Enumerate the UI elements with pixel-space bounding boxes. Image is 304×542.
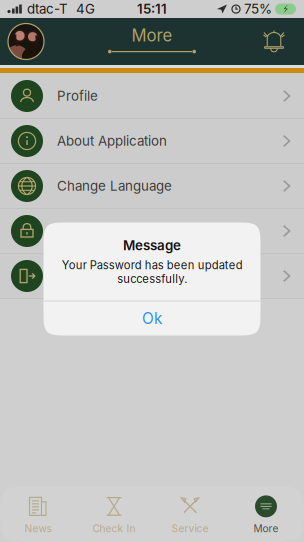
staticText: More: [253, 522, 278, 535]
staticText: Check In: [92, 522, 135, 535]
staticText: dtac-T 4G: [27, 1, 95, 17]
button[interactable]: Change Password: [0, 209, 304, 253]
staticText: Profile: [57, 88, 98, 104]
staticText: Ok: [142, 309, 162, 328]
button[interactable]: Notifications: [257, 24, 291, 58]
staticText: Change Language: [57, 178, 172, 194]
staticText: 75%: [244, 1, 272, 17]
staticText: 15:11: [137, 1, 167, 17]
staticText: News: [24, 522, 51, 535]
staticText: Message: [123, 237, 181, 253]
button[interactable]: Check In: [76, 486, 152, 542]
button[interactable]: About Application: [0, 119, 304, 163]
button[interactable]: Ok: [43, 301, 260, 335]
button[interactable]: Logout: [0, 254, 304, 298]
staticText: Service: [171, 522, 208, 535]
button[interactable]: News: [0, 486, 76, 542]
staticText: About Application: [57, 133, 167, 149]
staticText: Logout: [57, 268, 101, 284]
button[interactable]: More: [228, 486, 304, 542]
button[interactable]: Profile: [0, 74, 304, 118]
staticText: More: [131, 25, 172, 46]
button[interactable]: Service: [152, 486, 228, 542]
staticText: Your Password has been updated successfu…: [61, 258, 242, 286]
button[interactable]: Change Language: [0, 164, 304, 208]
